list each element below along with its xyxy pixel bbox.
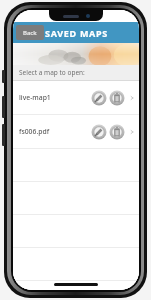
button[interactable]: Delete map [109,90,125,106]
staticText: Select a map to open: [19,68,85,77]
staticText: fs006.pdf [19,127,50,136]
staticText: live-map1 [19,93,51,102]
button[interactable]: Delete map [109,124,125,140]
button[interactable]: Edit map [91,90,107,106]
staticText: Back [23,29,37,37]
button[interactable]: live-map1 [13,81,139,114]
staticText: SAVED MAPS [45,27,108,39]
button[interactable]: fs006.pdf [13,115,139,148]
button[interactable]: Back [16,25,44,40]
button[interactable]: Edit map [91,124,107,140]
